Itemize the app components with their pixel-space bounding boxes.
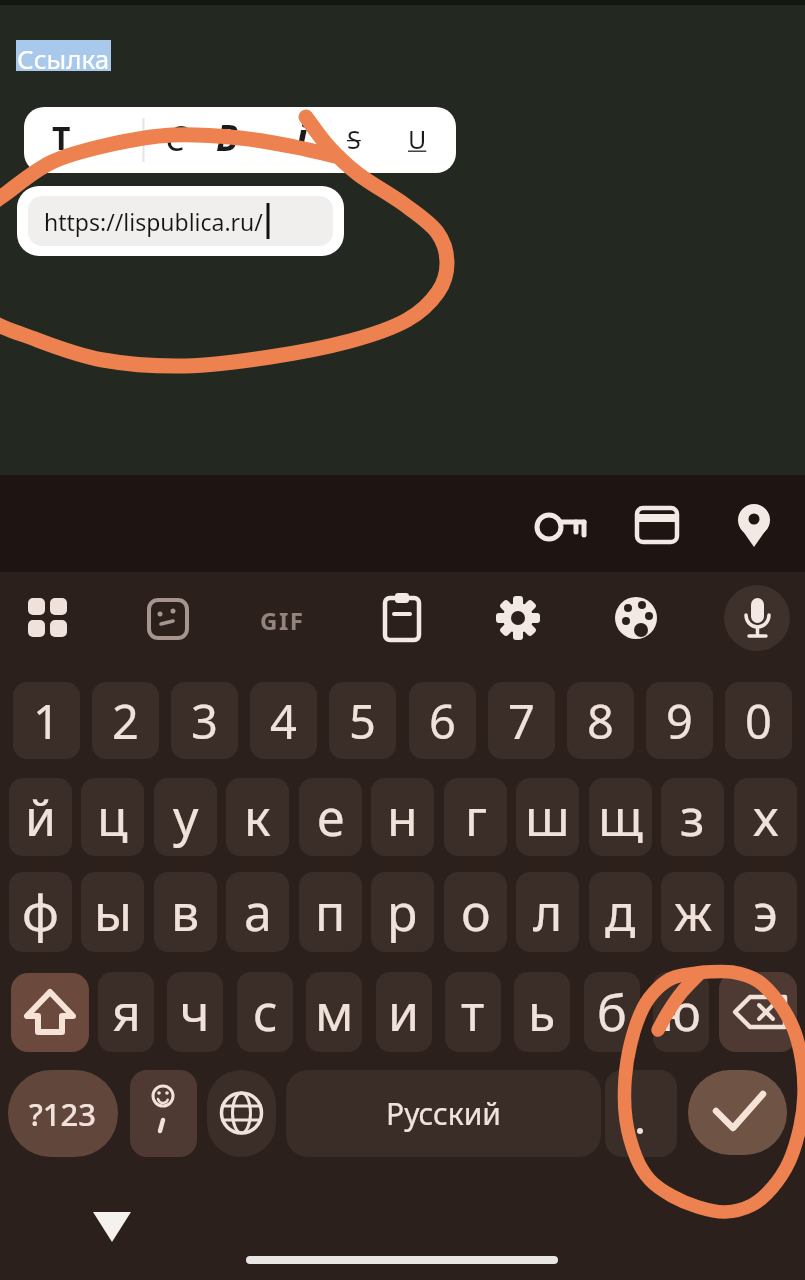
button[interactable]: ь (514, 972, 570, 1052)
staticText: 9 (666, 689, 693, 753)
staticText: к (244, 783, 271, 851)
button[interactable]: н (371, 778, 434, 856)
staticText: п (315, 878, 346, 946)
button[interactable]: 6 (409, 682, 476, 759)
button[interactable]: р (371, 872, 434, 952)
staticText: ж (674, 878, 712, 946)
staticText: ю (661, 978, 701, 1046)
staticText: S (347, 122, 361, 156)
button[interactable] (490, 592, 546, 646)
button[interactable]: Русский (286, 1070, 601, 1157)
button[interactable]: п (299, 872, 362, 952)
staticText: 5 (349, 689, 376, 753)
staticText: с (253, 978, 278, 1046)
staticText: Ссылка (17, 41, 110, 76)
button[interactable]: ?123 (8, 1070, 118, 1157)
staticText: 4 (270, 689, 297, 753)
button[interactable]: д (589, 872, 652, 952)
button[interactable]: щ (589, 778, 652, 856)
button[interactable]: е (299, 778, 362, 856)
button[interactable] (605, 1070, 677, 1157)
button[interactable] (255, 592, 311, 646)
button[interactable] (140, 592, 196, 646)
button[interactable]: 1 (13, 682, 80, 759)
button[interactable]: й (9, 778, 72, 856)
staticText: и (388, 978, 420, 1046)
staticText: B (216, 114, 238, 162)
button[interactable] (374, 592, 430, 646)
button[interactable]: ю (653, 972, 709, 1052)
staticText: Русский (386, 1093, 501, 1134)
button[interactable]: а (226, 872, 289, 952)
staticText: й (25, 783, 57, 851)
button[interactable]: л (516, 872, 579, 952)
button[interactable]: 4 (250, 682, 317, 759)
button[interactable]: 8 (567, 682, 634, 759)
button[interactable]: ш (516, 778, 579, 856)
button[interactable]: 2 (92, 682, 159, 759)
staticText: з (680, 783, 705, 851)
staticText: а (244, 878, 272, 946)
button[interactable]: 5 (329, 682, 396, 759)
staticText: у (173, 783, 199, 851)
button[interactable]: г (444, 778, 507, 856)
button[interactable]: ы (81, 872, 144, 952)
button[interactable]: ж (661, 872, 724, 952)
button[interactable] (130, 1070, 197, 1157)
button[interactable] (724, 585, 790, 651)
staticText: ы (94, 878, 132, 946)
button[interactable] (207, 1070, 276, 1157)
staticText: GIF (260, 604, 305, 637)
button[interactable]: в (154, 872, 217, 952)
button[interactable] (17, 186, 344, 256)
staticText: м (315, 978, 354, 1046)
staticText: 3 (191, 689, 218, 753)
staticText: 0 (745, 689, 772, 753)
button[interactable]: з (661, 778, 724, 856)
button[interactable]: м (306, 972, 362, 1052)
staticText: л (533, 878, 563, 946)
button[interactable]: 3 (171, 682, 238, 759)
button[interactable] (20, 592, 76, 646)
button[interactable]: ч (167, 972, 223, 1052)
button[interactable] (11, 973, 89, 1052)
staticText: р (387, 878, 418, 946)
button[interactable] (726, 498, 782, 552)
button[interactable]: 0 (725, 682, 792, 759)
button[interactable]: т (445, 972, 501, 1052)
button[interactable]: у (154, 778, 217, 856)
button[interactable]: 9 (646, 682, 713, 759)
button[interactable]: с (237, 972, 293, 1052)
button[interactable]: 7 (488, 682, 555, 759)
staticText: х (753, 783, 779, 851)
staticText: U (408, 122, 427, 156)
button[interactable]: э (734, 872, 797, 952)
staticText: я (112, 978, 141, 1046)
staticText: г (465, 783, 487, 851)
staticText: C (165, 114, 186, 162)
staticText: 6 (429, 689, 456, 753)
staticText: н (387, 783, 418, 851)
button[interactable] (532, 498, 588, 552)
button[interactable]: б (584, 972, 640, 1052)
button[interactable]: я (98, 972, 154, 1052)
button[interactable] (629, 498, 685, 552)
staticText: 7 (508, 689, 535, 753)
staticText: ш (525, 783, 570, 851)
staticText: 1 (33, 689, 60, 753)
button[interactable] (688, 1070, 787, 1155)
button[interactable] (24, 107, 456, 173)
button[interactable]: к (226, 778, 289, 856)
button[interactable]: ц (81, 778, 144, 856)
staticText: ц (97, 783, 128, 851)
button[interactable]: х (734, 778, 797, 856)
staticText: о (461, 878, 491, 946)
staticText: ч (180, 978, 210, 1046)
button[interactable] (719, 972, 797, 1052)
staticText: е (317, 783, 345, 851)
button[interactable]: и (376, 972, 432, 1052)
button[interactable]: о (444, 872, 507, 952)
button[interactable]: ф (9, 872, 72, 952)
button[interactable] (608, 592, 664, 646)
button[interactable] (88, 1202, 136, 1250)
